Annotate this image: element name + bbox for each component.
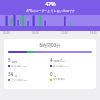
- button[interactable]: 0: [50, 71, 92, 81]
- staticText: 着信/発信 47%: [53, 64, 69, 67]
- staticText: 47%のユーザーよりも長い使用です: [26, 9, 75, 13]
- button[interactable]: 6時間03分: [4, 39, 96, 89]
- staticText: 5: [8, 57, 11, 63]
- staticText: 47%: [45, 1, 56, 8]
- staticText: 時間31分: [54, 59, 65, 63]
- staticText: 0: [50, 71, 53, 77]
- button[interactable]: Usage timeline chart: [0, 15, 100, 26]
- staticText: 18:00: [90, 31, 97, 35]
- button[interactable]: 4: [50, 57, 92, 67]
- staticText: 34: [8, 71, 14, 77]
- staticText: 分: [54, 74, 57, 77]
- staticText: 6時間03分: [8, 42, 92, 48]
- staticText: 12:00: [61, 31, 68, 35]
- staticText: 留守番電話: [53, 78, 65, 81]
- staticText: 4: [50, 57, 53, 63]
- staticText: 00:00: [3, 31, 10, 35]
- staticText: 着信/発信 74%: [11, 64, 27, 67]
- staticText: ビデオ通話 9%: [11, 78, 28, 81]
- button[interactable]: 5: [8, 57, 50, 67]
- staticText: 分: [15, 74, 18, 77]
- staticText: 06:00: [32, 31, 39, 35]
- button[interactable]: 34: [8, 71, 50, 81]
- staticText: 時間: [12, 60, 18, 63]
